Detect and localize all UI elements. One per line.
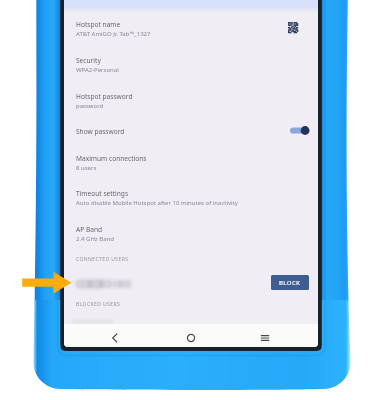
button[interactable]: Share hotspot QR code bbox=[288, 22, 298, 33]
button[interactable]: Maximum connections bbox=[76, 154, 316, 172]
button[interactable]: Recent apps bbox=[256, 329, 274, 347]
staticText: CONNECTED USERS bbox=[76, 256, 129, 263]
staticText: WPA2-Personal bbox=[76, 66, 119, 74]
button[interactable]: BLOCK bbox=[271, 275, 309, 290]
button[interactable]: AP Band bbox=[76, 225, 316, 243]
button[interactable]: Timeout settings bbox=[76, 189, 316, 207]
button[interactable]: BLOCK bbox=[64, 272, 318, 294]
staticText: AP Band bbox=[76, 225, 103, 234]
button[interactable]: Show password bbox=[76, 127, 316, 136]
staticText: BLOCK bbox=[279, 279, 301, 287]
button[interactable]: Hotspot password bbox=[76, 92, 316, 110]
staticText: 2.4 GHz Band bbox=[76, 235, 114, 243]
staticText: Maximum connections bbox=[76, 154, 147, 163]
button[interactable]: Back bbox=[106, 329, 124, 347]
button[interactable]: BLOCKED USERS bbox=[76, 301, 121, 308]
staticText: Hotspot name bbox=[76, 20, 121, 29]
button[interactable]: Home bbox=[182, 329, 200, 347]
staticText: Timeout settings bbox=[76, 189, 129, 198]
staticText: Auto disable Mobile Hotspot after 10 min… bbox=[76, 199, 238, 207]
staticText: Show password bbox=[76, 127, 125, 136]
staticText: password bbox=[76, 102, 104, 110]
staticText: Hotspot password bbox=[76, 92, 133, 101]
button[interactable]: Show password toggle bbox=[290, 125, 310, 136]
staticText: AT&T AmiGO Jr. Tab™_1327 bbox=[76, 30, 151, 38]
button[interactable]: Hotspot name bbox=[76, 20, 316, 38]
button[interactable]: Security bbox=[76, 56, 316, 74]
staticText: Security bbox=[76, 56, 101, 65]
staticText: 8 users bbox=[76, 164, 97, 172]
staticText: BLOCKED USERS bbox=[76, 301, 121, 308]
button[interactable]: CONNECTED USERS bbox=[76, 256, 129, 263]
